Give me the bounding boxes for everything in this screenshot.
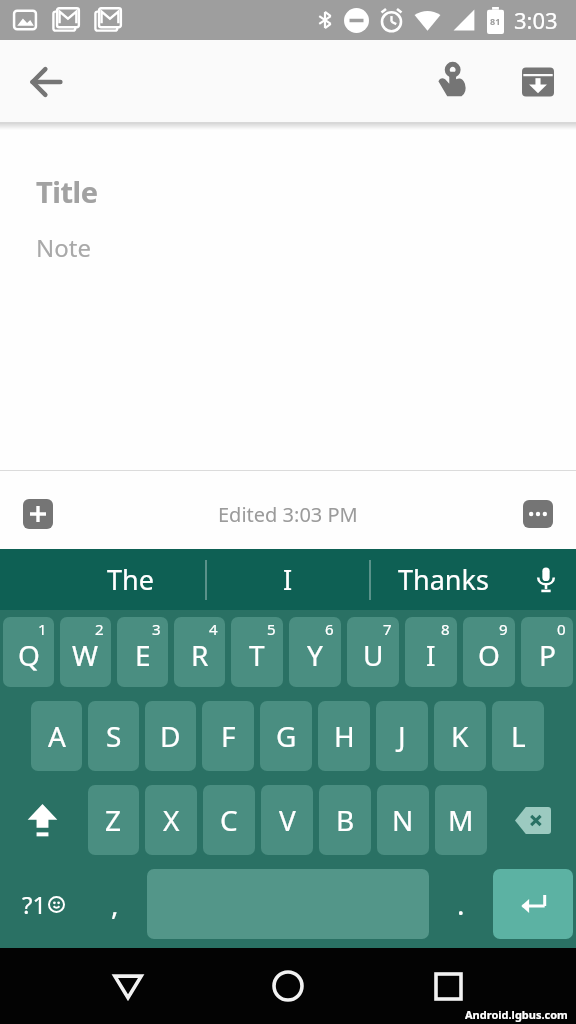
- button[interactable]: K: [434, 701, 486, 771]
- staticText: Title: [36, 172, 98, 211]
- staticText: 6: [325, 619, 334, 639]
- staticText: 3:03: [514, 5, 558, 35]
- button[interactable]: [493, 869, 573, 939]
- button[interactable]: [0, 778, 85, 862]
- staticText: M: [448, 801, 474, 839]
- button[interactable]: P: [521, 617, 573, 687]
- staticText: V: [279, 801, 296, 839]
- button[interactable]: [490, 778, 576, 862]
- staticText: 0: [557, 619, 566, 639]
- staticText: P: [539, 636, 556, 674]
- staticText: J: [398, 717, 406, 755]
- button[interactable]: [398, 948, 498, 1024]
- button[interactable]: [516, 60, 560, 104]
- button[interactable]: X: [145, 785, 197, 855]
- staticText: T: [249, 636, 265, 674]
- staticText: C: [220, 801, 238, 839]
- button[interactable]: S: [88, 701, 139, 771]
- staticText: 5: [267, 619, 276, 639]
- button[interactable]: M: [435, 785, 487, 855]
- button[interactable]: The: [0, 549, 205, 610]
- button[interactable]: I: [405, 617, 457, 687]
- staticText: .: [457, 885, 465, 923]
- staticText: Thanks: [398, 561, 489, 598]
- staticText: I: [283, 561, 293, 598]
- button[interactable]: E: [117, 617, 168, 687]
- staticText: ,: [111, 885, 119, 923]
- staticText: I: [426, 636, 436, 674]
- staticText: W: [72, 636, 99, 674]
- button[interactable]: ,: [86, 862, 144, 946]
- staticText: 9: [499, 619, 508, 639]
- staticText: The: [107, 561, 154, 598]
- staticText: F: [221, 717, 236, 755]
- button[interactable]: V: [261, 785, 313, 855]
- staticText: Note: [36, 231, 91, 264]
- staticText: D: [160, 717, 181, 755]
- button[interactable]: Y: [289, 617, 341, 687]
- staticText: A: [48, 717, 66, 755]
- button[interactable]: B: [319, 785, 371, 855]
- staticText: N: [392, 801, 414, 839]
- button[interactable]: L: [492, 701, 544, 771]
- button[interactable]: H: [318, 701, 370, 771]
- button[interactable]: O: [463, 617, 515, 687]
- staticText: U: [363, 636, 384, 674]
- staticText: 2: [95, 619, 104, 639]
- button[interactable]: [430, 60, 474, 104]
- button[interactable]: [78, 948, 178, 1024]
- staticText: Q: [18, 636, 40, 674]
- button[interactable]: [523, 500, 553, 528]
- button[interactable]: C: [203, 785, 255, 855]
- button[interactable]: W: [60, 617, 111, 687]
- button[interactable]: [23, 499, 53, 529]
- button[interactable]: .: [432, 862, 490, 946]
- button[interactable]: D: [145, 701, 196, 771]
- button[interactable]: A: [31, 701, 82, 771]
- button[interactable]: Z: [88, 785, 139, 855]
- staticText: 81: [490, 15, 501, 27]
- staticText: Z: [105, 801, 122, 839]
- button[interactable]: U: [347, 617, 399, 687]
- button[interactable]: ?1: [0, 862, 86, 946]
- staticText: G: [276, 717, 297, 755]
- button[interactable]: F: [202, 701, 254, 771]
- button[interactable]: T: [231, 617, 283, 687]
- button[interactable]: Q: [3, 617, 54, 687]
- staticText: Edited 3:03 PM: [218, 501, 358, 528]
- staticText: S: [106, 717, 122, 755]
- staticText: K: [451, 717, 469, 755]
- staticText: B: [336, 801, 355, 839]
- staticText: Android.lgbus.com: [465, 1007, 568, 1022]
- staticText: 1: [38, 619, 47, 639]
- staticText: E: [135, 636, 151, 674]
- staticText: ?1: [22, 888, 47, 921]
- button[interactable]: [26, 62, 66, 102]
- button[interactable]: R: [174, 617, 225, 687]
- button[interactable]: Thanks: [371, 549, 516, 610]
- button[interactable]: [516, 549, 576, 610]
- button[interactable]: N: [377, 785, 429, 855]
- staticText: Y: [307, 636, 323, 674]
- staticText: 3: [152, 619, 161, 639]
- staticText: 7: [383, 619, 392, 639]
- staticText: O: [478, 636, 500, 674]
- staticText: X: [163, 801, 180, 839]
- staticText: 8: [441, 619, 450, 639]
- button[interactable]: J: [376, 701, 428, 771]
- staticText: L: [511, 717, 526, 755]
- staticText: 4: [209, 619, 218, 639]
- button[interactable]: [238, 948, 338, 1024]
- staticText: H: [334, 717, 355, 755]
- button[interactable]: I: [207, 549, 369, 610]
- staticText: R: [191, 636, 209, 674]
- button[interactable]: G: [260, 701, 312, 771]
